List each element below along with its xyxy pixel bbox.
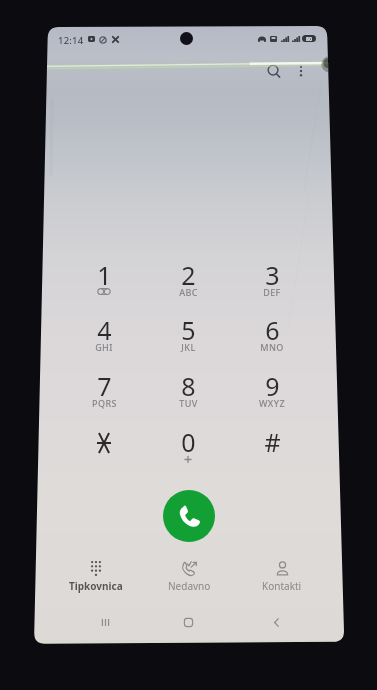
button[interactable]: Kontakti [238, 556, 326, 600]
button[interactable]: 1 [66, 250, 142, 302]
button[interactable]: 6 [234, 305, 310, 357]
button[interactable] [66, 417, 142, 469]
staticText: JKL [181, 341, 196, 353]
staticText: 3 [265, 258, 280, 292]
button[interactable]: More options [287, 57, 314, 84]
button[interactable]: 9 [234, 361, 310, 413]
button[interactable]: Back [262, 608, 290, 636]
button[interactable]: Call [163, 490, 215, 542]
button[interactable]: 8 [150, 361, 226, 413]
staticText: 7 [97, 369, 112, 403]
staticText: Kontakti [262, 579, 302, 593]
staticText: ABC [179, 286, 198, 298]
button[interactable]: 0 [150, 417, 226, 469]
staticText: 4 [97, 313, 112, 347]
staticText: PQRS [92, 397, 117, 409]
button[interactable]: Nedavno [145, 556, 233, 600]
staticText: 12:14 [58, 34, 84, 47]
staticText: 9 [265, 369, 280, 403]
staticText: GHI [95, 341, 113, 353]
button[interactable]: 2 [150, 250, 226, 302]
staticText: 80 [306, 35, 312, 42]
staticText: 0 [181, 425, 196, 459]
staticText: 6 [265, 313, 280, 347]
staticText: 1 [97, 258, 112, 292]
button[interactable]: 5 [150, 305, 226, 357]
staticText: # [264, 425, 281, 459]
button[interactable]: Recents [91, 608, 119, 636]
button[interactable]: 3 [234, 250, 310, 302]
button[interactable]: # [234, 417, 310, 469]
staticText: Tipkovnica [69, 579, 123, 593]
staticText: TUV [179, 397, 198, 409]
button[interactable]: Tipkovnica [52, 556, 140, 600]
staticText: Nedavno [168, 579, 211, 593]
staticText: DEF [263, 286, 281, 298]
button[interactable]: Search [260, 57, 287, 84]
staticText: MNO [260, 341, 284, 353]
staticText: WXYZ [259, 397, 285, 409]
staticText: 2 [181, 258, 196, 292]
button[interactable]: 7 [66, 361, 142, 413]
staticText: 5 [181, 313, 196, 347]
button[interactable]: 4 [66, 305, 142, 357]
button[interactable]: Home [174, 608, 202, 636]
staticText: 8 [181, 369, 196, 403]
